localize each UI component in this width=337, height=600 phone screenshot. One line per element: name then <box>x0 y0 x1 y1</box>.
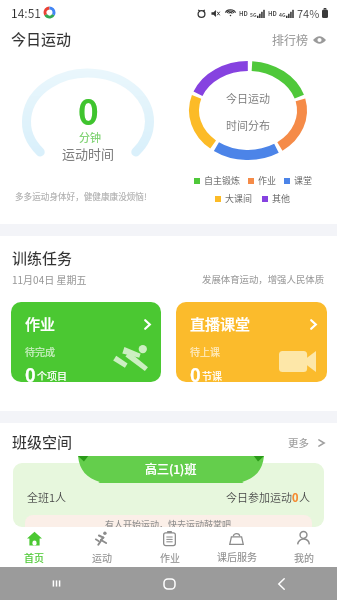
staticText: 时间分布 <box>226 117 270 133</box>
button[interactable]: 运动 <box>68 527 136 567</box>
button[interactable]: 直播课堂 <box>176 302 327 382</box>
staticText: 今日参加运动 <box>226 489 292 505</box>
button[interactable]: 首页 <box>0 527 68 567</box>
staticText: 自主锻炼 <box>204 174 241 187</box>
staticText: 作业 <box>258 174 277 187</box>
staticText: 分钟 <box>79 129 101 145</box>
staticText: 多多运动身体好，健健康康没烦恼! <box>15 190 147 202</box>
staticText: 训练任务 <box>12 247 73 269</box>
staticText: 更多 <box>288 435 309 450</box>
button[interactable]: 我的 <box>270 527 337 567</box>
staticText: 作业 <box>160 550 180 564</box>
staticText: 发展体育运动，增强人民体质 <box>202 272 325 286</box>
staticText: 今日运动 <box>11 28 72 50</box>
staticText: 74% <box>297 5 320 21</box>
staticText: 0 <box>190 361 201 382</box>
staticText: 0 <box>78 84 99 135</box>
staticText: 个项目 <box>37 368 67 382</box>
staticText: 首页 <box>24 550 44 564</box>
staticText: HD <box>239 9 248 18</box>
staticText: 排行榜 <box>272 31 309 48</box>
button[interactable]: 作业 <box>136 527 203 567</box>
staticText: 班级空间 <box>12 431 73 453</box>
button[interactable]: 排行榜 <box>266 31 327 48</box>
button[interactable]: 作业 <box>11 302 161 382</box>
staticText: 今日运动 <box>226 90 270 106</box>
staticText: 运动时间 <box>62 144 115 163</box>
button[interactable]: 全班1人 <box>0 456 337 527</box>
button[interactable]: 更多 <box>282 435 325 450</box>
staticText: 全班1人 <box>27 489 67 505</box>
staticText: 课堂 <box>294 174 313 187</box>
staticText: 11月04日 星期五 <box>12 272 87 286</box>
staticText: 大课间 <box>225 192 253 205</box>
staticText: 人 <box>299 489 310 505</box>
button[interactable]: Home <box>113 567 225 600</box>
staticText: 课后服务 <box>217 549 257 563</box>
button[interactable]: 课后服务 <box>203 527 270 567</box>
button[interactable]: Recent apps <box>0 567 113 600</box>
staticText: 0 <box>292 489 299 505</box>
staticText: 节课 <box>202 368 222 382</box>
staticText: 5G <box>250 11 257 18</box>
staticText: 有人开始运动，快去运动鼓掌吧 <box>105 518 232 527</box>
staticText: 待上课 <box>190 344 220 358</box>
staticText: HD <box>268 9 277 18</box>
staticText: 4G <box>279 11 286 18</box>
staticText: 其他 <box>272 192 291 205</box>
staticText: 14:51 <box>11 4 41 21</box>
button[interactable]: Back <box>225 567 337 600</box>
staticText: 运动 <box>92 550 112 564</box>
staticText: 高三(1)班 <box>145 460 197 477</box>
staticText: 0 <box>25 361 36 382</box>
staticText: 作业 <box>25 313 56 335</box>
staticText: 我的 <box>294 550 314 564</box>
staticText: 待完成 <box>25 344 55 358</box>
staticText: 直播课堂 <box>190 313 251 335</box>
